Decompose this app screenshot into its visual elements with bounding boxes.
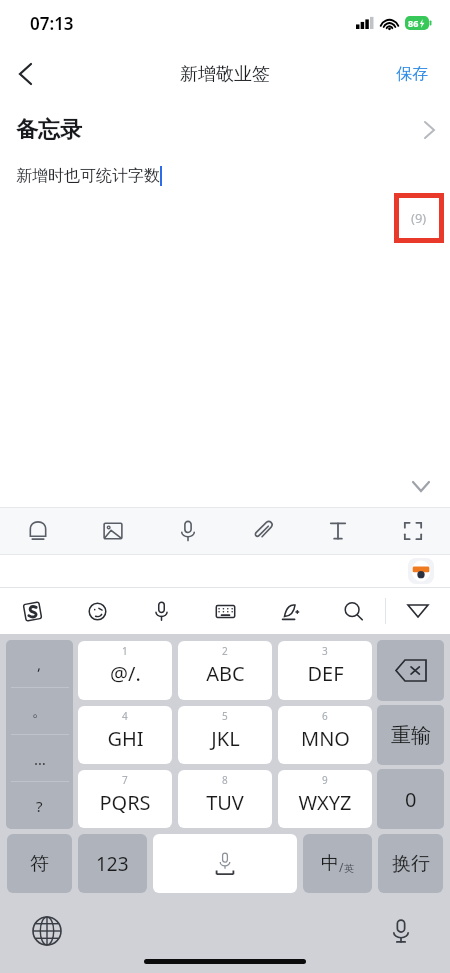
button[interactable]: Collapse	[406, 471, 436, 501]
button[interactable]: Back	[0, 49, 50, 99]
button[interactable]: …	[6, 735, 73, 782]
staticText: DEF	[307, 660, 344, 687]
staticText: 0	[405, 786, 417, 813]
button[interactable]: 中	[303, 834, 372, 893]
staticText: JKL	[211, 725, 240, 752]
staticText: 3	[322, 644, 328, 658]
staticText: ?	[36, 796, 43, 816]
button[interactable]: Image	[75, 508, 150, 554]
staticText: 8	[222, 773, 228, 787]
staticText: WXYZ	[298, 789, 352, 816]
staticText: 6	[322, 709, 328, 723]
staticText: 符	[30, 852, 49, 876]
staticText: 4	[122, 709, 128, 723]
button[interactable]: 保存	[388, 56, 436, 92]
button[interactable]: 0	[377, 769, 444, 829]
staticText: 9	[322, 773, 328, 787]
button[interactable]: 符	[7, 834, 72, 893]
staticText: 新增敬业签	[180, 63, 270, 86]
button[interactable]: 6	[278, 706, 372, 764]
button[interactable]: 2	[178, 641, 272, 700]
button[interactable]: Assistant	[408, 558, 434, 584]
staticText: 新增时也可统计字数	[16, 166, 160, 186]
button[interactable]: Backspace	[377, 640, 444, 701]
button[interactable]: 9	[278, 770, 372, 828]
staticText: 备忘录	[16, 116, 82, 144]
button[interactable]: 。	[6, 688, 73, 735]
button[interactable]: 换行	[378, 834, 443, 893]
button[interactable]: 123	[78, 834, 147, 893]
staticText: …	[34, 749, 46, 769]
button[interactable]: Handwriting	[257, 588, 321, 634]
staticText: 1	[122, 644, 128, 658]
button[interactable]: 7	[78, 770, 172, 828]
staticText: 5	[222, 709, 228, 723]
staticText: 。	[32, 702, 47, 721]
button[interactable]: Hide keyboard	[386, 588, 450, 634]
button[interactable]: Voice	[150, 508, 225, 554]
button[interactable]: Sogou	[0, 588, 65, 634]
button[interactable]: ,	[6, 640, 73, 688]
button[interactable]: Fullscreen	[375, 508, 450, 554]
button[interactable]: Emoji	[65, 588, 129, 634]
staticText: 换行	[392, 852, 430, 876]
button[interactable]: Language	[30, 914, 64, 948]
staticText: 7	[122, 773, 128, 787]
staticText: @/.	[110, 660, 141, 687]
button[interactable]: Attachment	[225, 508, 300, 554]
button[interactable]: 8	[178, 770, 272, 828]
staticText: GHI	[107, 725, 144, 752]
button[interactable]: Space	[153, 834, 297, 893]
staticText: /	[339, 859, 344, 875]
button[interactable]: 重输	[377, 705, 444, 765]
staticText: ,	[37, 654, 42, 674]
staticText: 2	[222, 644, 228, 658]
staticText: 重输	[391, 723, 431, 748]
button[interactable]: Voice input	[129, 588, 193, 634]
staticText: 07:13	[30, 12, 74, 35]
button[interactable]: Text format	[300, 508, 375, 554]
button[interactable]: 5	[178, 706, 272, 764]
button[interactable]: Voice input	[384, 914, 418, 948]
button[interactable]: 4	[78, 706, 172, 764]
staticText: 中	[321, 852, 339, 875]
staticText: PQRS	[99, 789, 151, 816]
button[interactable]: Keyboard	[193, 588, 257, 634]
staticText: ABC	[206, 660, 245, 687]
button[interactable]: 备忘录	[0, 102, 450, 158]
button[interactable]: 1	[78, 641, 172, 700]
button[interactable]: 3	[278, 641, 372, 700]
staticText: TUV	[206, 789, 244, 816]
staticText: 123	[96, 851, 129, 877]
staticText: MNO	[301, 725, 350, 752]
button[interactable]: ?	[6, 782, 73, 829]
button[interactable]: Search	[321, 588, 385, 634]
staticText: 保存	[396, 64, 428, 84]
button[interactable]: Reminder	[0, 508, 75, 554]
staticText: (9)	[411, 209, 427, 227]
staticText: 英	[344, 862, 354, 875]
staticText: 86	[408, 17, 419, 29]
